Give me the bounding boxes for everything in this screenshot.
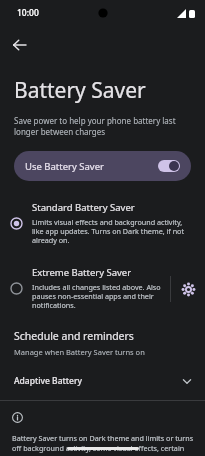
staticText: Includes all changes listed above. Also … [32, 282, 165, 311]
staticText: Use Battery Saver [25, 160, 158, 173]
staticText: Manage when Battery Saver turns on [14, 347, 145, 357]
button[interactable]: Back [4, 30, 34, 60]
button[interactable]: Standard Battery Saver [0, 197, 205, 250]
staticText: 10:00 [17, 7, 39, 19]
staticText: Standard Battery Saver [32, 201, 135, 214]
button[interactable]: Adaptive Battery [0, 370, 205, 392]
button[interactable]: Use Battery Saver [14, 151, 191, 181]
button[interactable]: Extreme Battery Saver settings [171, 272, 205, 306]
staticText: Schedule and reminders [14, 329, 134, 343]
staticText: Battery Saver [14, 76, 146, 105]
staticText: Extreme Battery Saver [32, 266, 132, 279]
staticText: Limits visual effects and background act… [32, 217, 193, 246]
staticText: Battery Saver turns on Dark theme and li… [12, 433, 195, 456]
staticText: Adaptive Battery [14, 375, 181, 387]
staticText: Save power to help your phone battery la… [14, 115, 191, 137]
button[interactable]: Extreme Battery Saver [0, 262, 165, 315]
